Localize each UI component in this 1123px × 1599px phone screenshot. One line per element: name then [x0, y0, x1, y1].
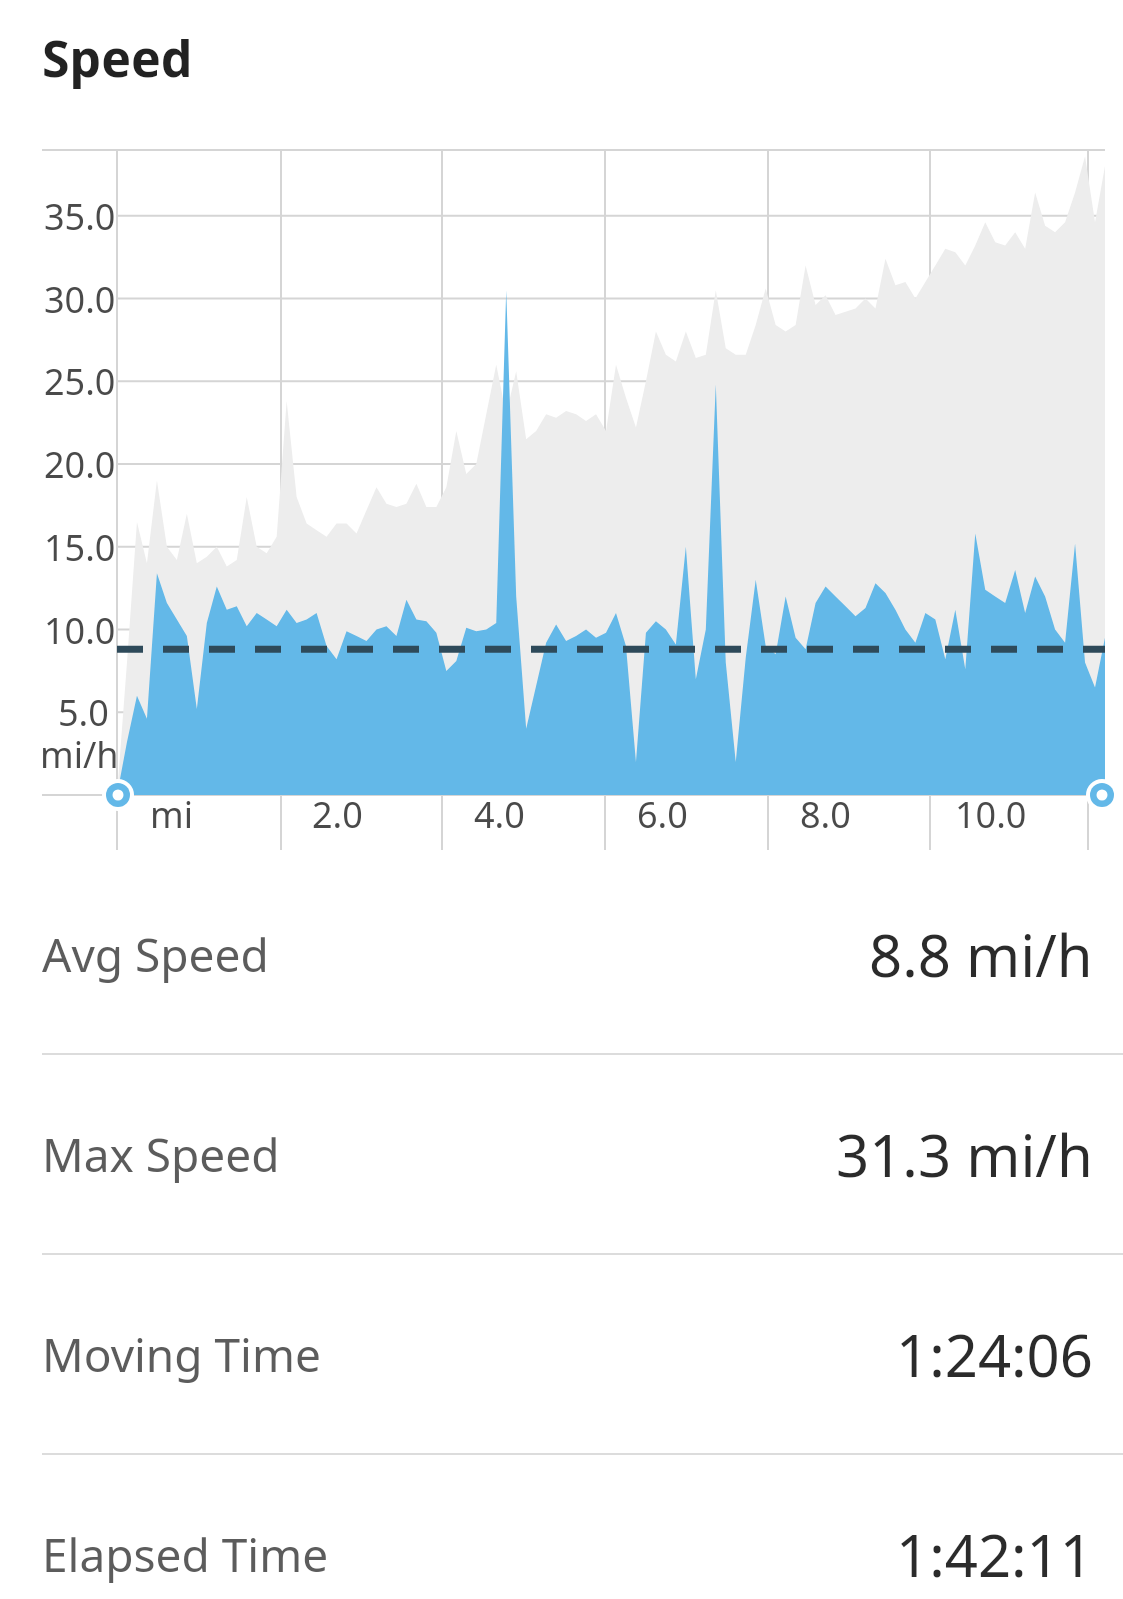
staticText: 15.0 — [44, 523, 116, 572]
staticText: 25.0 — [44, 357, 116, 406]
button[interactable]: Moving Time — [0, 1255, 1123, 1453]
staticText: 10.0 — [955, 790, 1027, 839]
staticText: 5.0 — [58, 688, 109, 737]
staticText: 10.0 — [44, 606, 116, 655]
staticText: 6.0 — [637, 790, 688, 839]
button[interactable]: Avg Speed — [0, 855, 1123, 1053]
button[interactable]: Elapsed Time — [0, 1455, 1123, 1599]
staticText: 2.0 — [312, 790, 363, 839]
staticText: 20.0 — [44, 440, 116, 489]
staticText: 4.0 — [474, 790, 525, 839]
staticText: mi — [150, 790, 193, 839]
staticText: Max Speed — [42, 1123, 280, 1186]
staticText: Speed — [42, 24, 193, 92]
staticText: 31.3 mi/h — [836, 1115, 1093, 1194]
staticText: mi/h — [40, 730, 119, 779]
staticText: 1:42:11 — [896, 1515, 1093, 1594]
staticText: Elapsed Time — [42, 1523, 329, 1586]
staticText: 1:24:06 — [896, 1315, 1093, 1394]
staticText: 8.0 — [800, 790, 851, 839]
staticText: Moving Time — [42, 1323, 321, 1386]
staticText: 35.0 — [44, 192, 116, 241]
button[interactable]: Max Speed — [0, 1055, 1123, 1253]
staticText: Avg Speed — [42, 923, 269, 986]
staticText: 30.0 — [44, 275, 116, 324]
staticText: 8.8 mi/h — [869, 915, 1093, 994]
